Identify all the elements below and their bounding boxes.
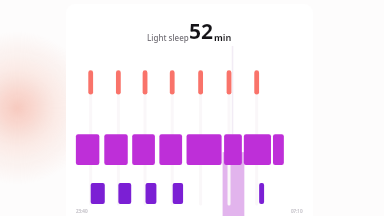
staticText: min <box>214 31 232 43</box>
staticText: 23:40 <box>76 208 88 214</box>
staticText: 52 <box>189 17 214 46</box>
staticText: 07:10 <box>291 208 303 214</box>
button[interactable]: Sleep stage chart <box>66 46 313 208</box>
button[interactable]: Light sleep <box>66 4 313 216</box>
staticText: Light sleep <box>147 32 189 43</box>
